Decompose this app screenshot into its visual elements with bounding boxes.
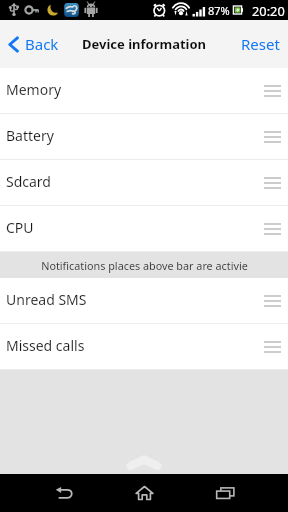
button[interactable]: Recent apps: [205, 474, 245, 512]
staticText: 87%: [208, 3, 230, 18]
button[interactable]: Back: [0, 20, 67, 68]
other: Reorder Sdcard: [264, 177, 281, 189]
staticText: Device information: [82, 35, 207, 53]
staticText: Unread SMS: [6, 290, 87, 309]
button[interactable]: Sdcard: [0, 160, 288, 205]
other: Reorder CPU: [264, 223, 281, 235]
button[interactable]: Home: [124, 474, 164, 512]
button[interactable]: Back: [44, 474, 84, 512]
button[interactable]: Missed calls: [0, 324, 288, 369]
staticText: CPU: [6, 218, 34, 237]
staticText: Notifications places above bar are activ…: [41, 258, 248, 273]
other: Reorder Unread SMS: [264, 295, 281, 307]
staticText: 20:20: [252, 2, 285, 19]
staticText: Reset: [241, 34, 280, 54]
button[interactable]: Reset: [232, 20, 288, 68]
other: Reorder Missed calls: [264, 341, 281, 353]
button[interactable]: Battery: [0, 114, 288, 159]
button[interactable]: Unread SMS: [0, 278, 288, 323]
other: Reorder Memory: [264, 85, 281, 97]
staticText: Sdcard: [6, 172, 51, 191]
button[interactable]: CPU: [0, 206, 288, 251]
staticText: Missed calls: [6, 336, 85, 355]
staticText: Back: [25, 34, 59, 54]
staticText: Battery: [6, 126, 54, 145]
other: Reorder Battery: [264, 131, 281, 143]
button[interactable]: Memory: [0, 68, 288, 113]
staticText: Memory: [6, 80, 62, 99]
